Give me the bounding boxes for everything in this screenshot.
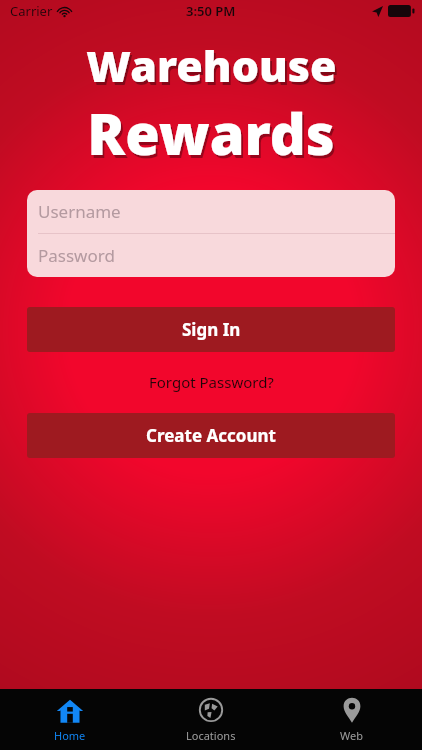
staticText: 3:50 PM	[186, 2, 236, 20]
staticText: Carrier	[10, 2, 53, 20]
staticText: Warehouse	[88, 39, 339, 98]
button[interactable]: Home	[0, 689, 140, 750]
button[interactable]: Forgot Password?	[27, 367, 395, 397]
button[interactable]: Locations	[140, 689, 281, 750]
staticText: Forgot Password?	[149, 372, 274, 392]
button[interactable]: Password	[27, 234, 395, 277]
button[interactable]: Web	[281, 689, 422, 750]
staticText: Sign In	[182, 318, 241, 341]
staticText: Warehouse	[86, 36, 337, 95]
staticText: Rewards	[87, 95, 335, 171]
button[interactable]: Username	[27, 190, 395, 233]
button[interactable]: Create Account	[27, 413, 395, 458]
staticText: Password	[38, 244, 115, 267]
staticText: Username	[38, 200, 121, 223]
staticText: Locations	[186, 728, 236, 743]
staticText: Rewards	[89, 98, 337, 174]
staticText: Web	[340, 728, 363, 743]
button[interactable]: Sign In	[27, 307, 395, 352]
staticText: Create Account	[146, 424, 276, 447]
staticText: Home	[54, 728, 86, 743]
